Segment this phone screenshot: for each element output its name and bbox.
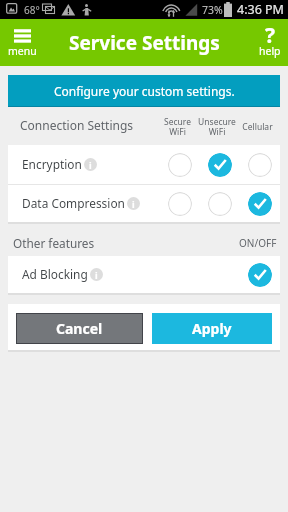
staticText: 4:36 PM — [237, 1, 284, 18]
button[interactable]: Data Compression option — [168, 192, 192, 216]
staticText: i — [95, 269, 98, 281]
staticText: ? — [265, 21, 276, 50]
staticText: 68° — [24, 3, 40, 17]
button[interactable]: Data Compression selected — [248, 192, 272, 216]
button[interactable]: Help — [252, 19, 288, 66]
button[interactable]: Data Compression — [8, 185, 280, 222]
staticText: Other features — [13, 235, 95, 251]
staticText: Apply — [192, 319, 232, 338]
staticText: Encryption — [22, 156, 82, 172]
staticText: ON/OFF — [239, 236, 277, 250]
staticText: i — [89, 159, 92, 171]
staticText: Connection Settings — [20, 117, 134, 133]
button[interactable]: Data Compression option — [208, 192, 232, 216]
staticText: i — [132, 198, 135, 210]
staticText: Cellular — [242, 121, 273, 133]
button[interactable]: Configure your custom settings. — [8, 75, 280, 107]
button[interactable]: Ad Blocking selected — [248, 263, 272, 287]
staticText: Secure WiFi — [164, 116, 191, 138]
button[interactable]: More info — [84, 158, 97, 171]
button[interactable]: Encryption option — [168, 153, 192, 177]
button[interactable]: Apply — [152, 313, 272, 344]
staticText: menu — [8, 44, 37, 58]
button[interactable]: More info — [90, 268, 103, 281]
staticText: Configure your custom settings. — [54, 83, 235, 99]
staticText: Service Settings — [69, 30, 220, 56]
button[interactable]: More info — [127, 197, 140, 210]
button[interactable]: Encryption — [8, 145, 280, 184]
staticText: Unsecure WiFi — [198, 116, 236, 138]
staticText: help — [259, 44, 281, 58]
button[interactable]: Cancel — [16, 313, 143, 344]
staticText: 73% — [202, 3, 223, 17]
button[interactable]: Encryption selected — [208, 153, 232, 177]
button[interactable]: Menu — [0, 19, 44, 66]
button[interactable]: Ad Blocking — [8, 256, 280, 293]
staticText: Ad Blocking — [22, 266, 88, 282]
staticText: Cancel — [56, 319, 103, 338]
button[interactable]: Encryption option — [248, 153, 272, 177]
staticText: Data Compression — [22, 195, 125, 211]
